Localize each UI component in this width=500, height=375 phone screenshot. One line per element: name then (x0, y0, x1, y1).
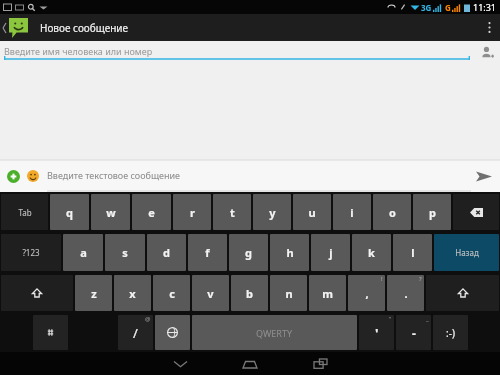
button[interactable]: z (75, 275, 112, 311)
button[interactable]: settings (33, 315, 68, 350)
button[interactable]: l (393, 234, 432, 271)
button[interactable]: c (153, 275, 190, 311)
staticText: u (308, 205, 316, 220)
staticText: Назад (455, 247, 479, 258)
button[interactable]: m (309, 275, 346, 311)
button[interactable]: , (348, 275, 385, 311)
button[interactable]: dash (396, 315, 431, 350)
staticText: - (412, 325, 416, 341)
button[interactable]: q (50, 194, 89, 230)
button[interactable]: v (192, 275, 229, 311)
button[interactable]: w (91, 194, 130, 230)
staticText: . (404, 286, 408, 301)
staticText: d (163, 245, 170, 260)
button[interactable]: Смайлики (23, 166, 43, 186)
staticText: Новое сообщение (40, 21, 129, 35)
staticText: QWERTY (256, 327, 293, 339)
staticText: ! (381, 275, 383, 283)
staticText: 3G (421, 2, 432, 13)
button[interactable]: s (105, 234, 145, 271)
button[interactable]: slash (118, 315, 153, 350)
button[interactable]: e (132, 194, 171, 230)
staticText: w (106, 205, 116, 220)
button[interactable]: Ещё (478, 14, 500, 41)
button[interactable]: smile (433, 315, 468, 350)
staticText: c (169, 286, 175, 301)
button[interactable]: t (213, 194, 251, 230)
button[interactable]: Назад (0, 14, 30, 41)
button[interactable]: . (387, 275, 424, 311)
staticText: q (66, 205, 73, 220)
staticText: _ (426, 315, 429, 323)
staticText: k (368, 245, 375, 260)
staticText: Введите имя человека или номер (4, 45, 153, 57)
button[interactable]: ?123 (1, 234, 61, 271)
button[interactable]: Backspace (453, 194, 499, 230)
button[interactable]: Недавние приложения (285, 352, 355, 375)
staticText: G (445, 2, 451, 13)
button[interactable]: p (413, 194, 451, 230)
staticText: n (285, 286, 293, 301)
staticText: f (205, 245, 210, 260)
button[interactable]: o (373, 194, 411, 230)
button[interactable]: h (270, 234, 309, 271)
button[interactable]: k (352, 234, 391, 271)
staticText: @ (145, 315, 151, 323)
staticText: , (365, 286, 369, 301)
button[interactable]: Введите имя человека или номер (4, 45, 470, 60)
staticText: e (148, 205, 155, 220)
staticText: y (269, 205, 276, 220)
staticText: ' (375, 324, 379, 342)
button[interactable]: f (188, 234, 227, 271)
button[interactable]: Назад (434, 234, 499, 271)
staticText: Tab (18, 207, 32, 218)
button[interactable]: u (293, 194, 331, 230)
button[interactable]: b (231, 275, 268, 311)
staticText: g (245, 245, 252, 260)
staticText: / (133, 324, 138, 342)
button[interactable]: Tab (1, 194, 48, 230)
staticText: " (389, 315, 392, 323)
staticText: s (122, 245, 128, 260)
button[interactable]: g (229, 234, 268, 271)
staticText: h (286, 245, 294, 260)
staticText: i (350, 205, 354, 220)
button[interactable]: apos (359, 315, 394, 350)
staticText: ?123 (22, 247, 40, 258)
button[interactable]: d (147, 234, 186, 271)
staticText: Введите текстовое сообщение (47, 169, 181, 181)
staticText: r (190, 205, 195, 220)
staticText: o (389, 205, 396, 220)
staticText: 11:31 (473, 1, 497, 13)
button[interactable]: Введите текстовое сообщение (47, 160, 471, 192)
button[interactable]: r (173, 194, 211, 230)
staticText: j (329, 245, 333, 260)
staticText: m (322, 286, 333, 301)
staticText: z (91, 286, 97, 301)
staticText: t (230, 205, 235, 220)
button[interactable]: Shift (1, 275, 73, 311)
button[interactable]: Главный экран (215, 352, 285, 375)
staticText: l (411, 245, 415, 260)
staticText: b (246, 286, 253, 301)
button[interactable]: Отправить (471, 162, 497, 190)
button[interactable]: n (270, 275, 307, 311)
staticText: x (129, 286, 136, 301)
button[interactable]: x (114, 275, 151, 311)
staticText: ? (419, 275, 422, 283)
staticText: a (80, 245, 87, 260)
button[interactable]: y (253, 194, 291, 230)
button[interactable]: space (192, 315, 357, 350)
staticText: :-) (446, 326, 455, 340)
button[interactable]: Назад (145, 352, 215, 375)
button[interactable]: Добавить контакт (474, 41, 500, 63)
staticText: p (429, 205, 436, 220)
staticText: v (207, 286, 214, 301)
button[interactable]: a (63, 234, 103, 271)
button[interactable]: Shift (426, 275, 499, 311)
button[interactable]: Добавить вложение (3, 166, 23, 186)
button[interactable]: j (311, 234, 350, 271)
button[interactable]: globe (155, 315, 190, 350)
button[interactable]: i (333, 194, 371, 230)
